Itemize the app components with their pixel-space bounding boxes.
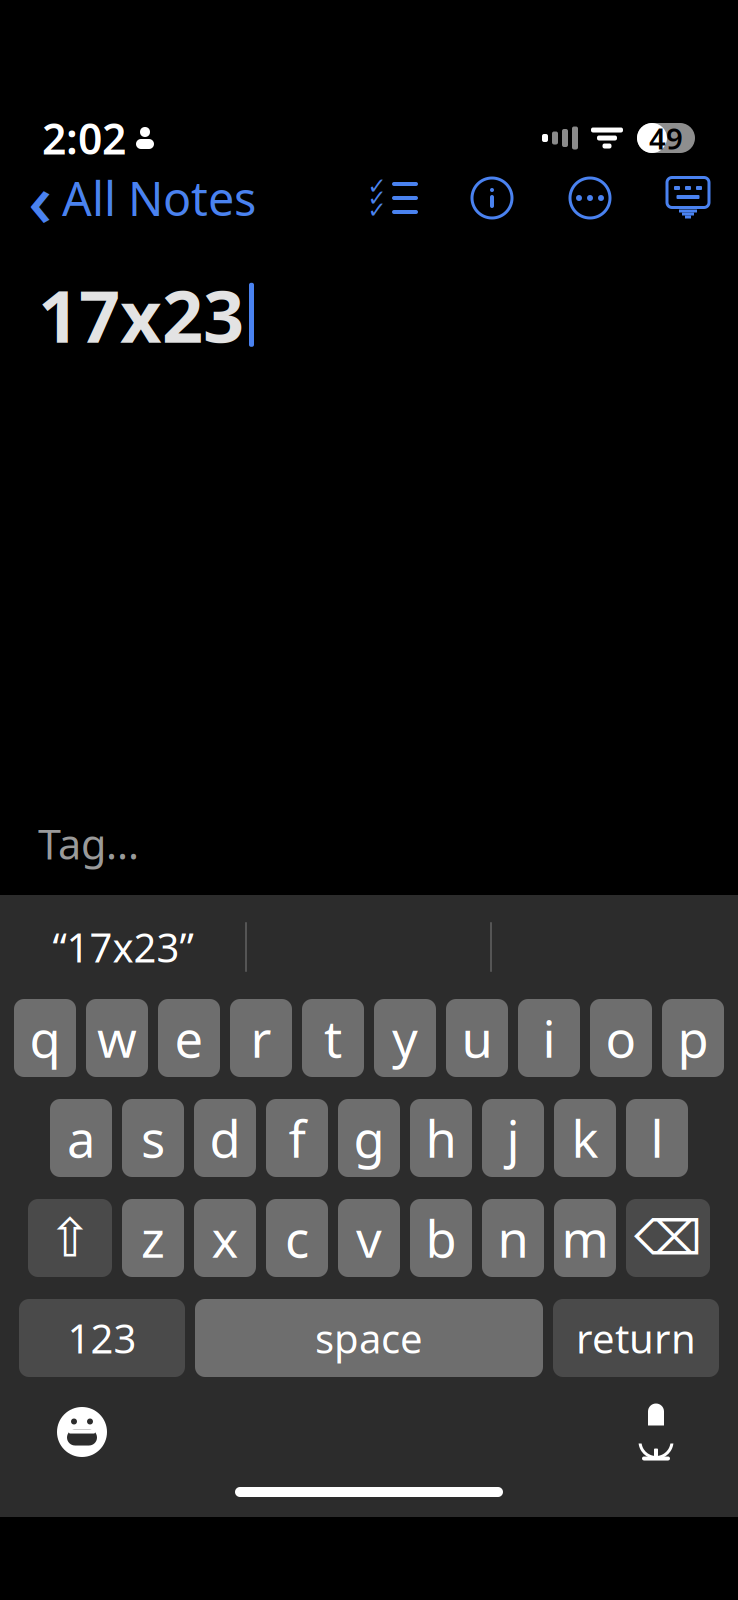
button[interactable]: q [14,999,76,1077]
button[interactable]: u [446,999,508,1077]
button[interactable]: return [553,1299,719,1377]
button[interactable]: l [626,1099,688,1177]
button[interactable]: y [374,999,436,1077]
button[interactable]: Info [466,172,518,224]
staticText: m [561,1204,608,1272]
staticText: ✓ [367,185,386,211]
staticText: u [461,1004,492,1072]
button[interactable]: e [158,999,220,1077]
staticText: y [392,1004,418,1072]
button[interactable]: k [554,1099,616,1177]
button[interactable]: More [564,172,616,224]
staticText: 2:02 [42,110,126,166]
button[interactable]: h [410,1099,472,1177]
button[interactable]: p [662,999,724,1077]
staticText: x [211,1204,238,1272]
button[interactable]: r [230,999,292,1077]
button[interactable]: ‹ [24,167,260,229]
staticText: g [353,1104,384,1172]
button[interactable]: s [122,1099,184,1177]
staticText: z [141,1204,165,1272]
staticText: d [209,1104,240,1172]
button[interactable]: m [554,1199,616,1277]
staticText: h [425,1104,456,1172]
button[interactable]: space [195,1299,543,1377]
staticText: j [506,1104,519,1172]
button[interactable]: Hide Keyboard [662,172,714,224]
staticText: ⌫ [634,1211,702,1265]
staticText: s [141,1104,165,1172]
staticText: a [67,1104,95,1172]
button[interactable]: d [194,1099,256,1177]
button[interactable]: Shift [28,1199,112,1277]
button[interactable]: Dictation [620,1396,692,1468]
button[interactable]: Emoji [46,1396,118,1468]
staticText: t [324,1004,342,1072]
button[interactable]: w [86,999,148,1077]
staticText: Tag... [38,816,139,871]
staticText: 123 [67,1311,136,1364]
button[interactable]: Delete [626,1199,710,1277]
staticText: w [97,1004,137,1072]
button[interactable]: “17x23” [1,910,245,984]
button[interactable]: z [122,1199,184,1277]
staticText: l [650,1104,663,1172]
staticText: ‹ [28,148,52,248]
staticText: All Notes [62,167,256,229]
button[interactable]: b [410,1199,472,1277]
staticText: e [174,1004,203,1072]
staticText: space [315,1311,423,1364]
button[interactable]: j [482,1099,544,1177]
button[interactable]: a [50,1099,112,1177]
button[interactable]: x [194,1199,256,1277]
staticText: 17x23 [38,267,244,363]
button[interactable]: Checklist [368,172,420,224]
staticText: b [425,1204,456,1272]
button[interactable]: o [590,999,652,1077]
button[interactable]: v [338,1199,400,1277]
button[interactable]: t [302,999,364,1077]
staticText: ⇧ [47,1208,92,1268]
staticText: q [29,1004,60,1072]
button[interactable]: i [518,999,580,1077]
staticText: v [356,1204,382,1272]
button[interactable]: g [338,1099,400,1177]
staticText: i [542,1004,555,1072]
button[interactable]: 123 [19,1299,185,1377]
staticText: c [285,1204,309,1272]
staticText: “17x23” [52,920,193,973]
staticText: r [250,1004,271,1072]
staticText: ✓ [367,173,386,199]
staticText: 49 [649,118,683,157]
staticText: p [677,1004,708,1072]
staticText: ✓ [367,197,386,223]
button[interactable]: c [266,1199,328,1277]
staticText: n [497,1204,528,1272]
button[interactable]: f [266,1099,328,1177]
button[interactable]: n [482,1199,544,1277]
staticText: o [605,1004,636,1072]
staticText: return [576,1311,696,1364]
staticText: k [571,1104,598,1172]
staticText: f [288,1104,305,1172]
